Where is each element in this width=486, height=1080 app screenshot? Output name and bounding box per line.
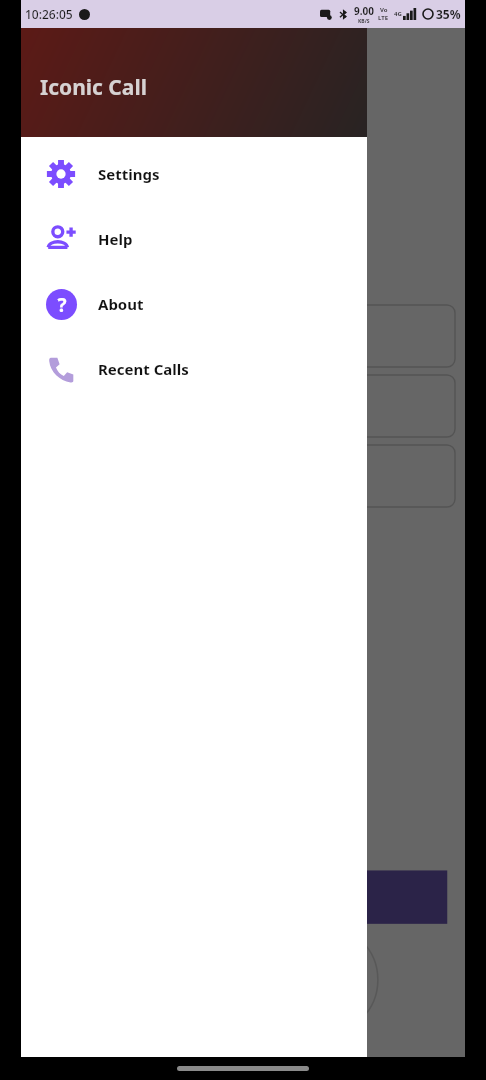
staticText: 10:26:05 (25, 6, 73, 22)
other: Recent Calls (47, 355, 75, 383)
button[interactable]: Help (30, 211, 358, 266)
other: Settings (46, 159, 76, 189)
button[interactable]: Recent Calls (30, 341, 358, 396)
staticText: Settings (98, 164, 160, 184)
staticText: Recent Calls (98, 359, 189, 379)
staticText: Iconic Call (40, 73, 147, 102)
other: Help (45, 223, 77, 255)
staticText: 9.00 (354, 4, 374, 18)
staticText: Help (98, 229, 133, 249)
other: About (46, 289, 77, 320)
staticText: 4G (394, 10, 402, 18)
button[interactable]: About (30, 276, 358, 331)
staticText: KB/S (358, 18, 370, 25)
staticText: Vo (380, 6, 388, 14)
staticText: ? (57, 292, 67, 318)
staticText: 35% (436, 6, 461, 22)
staticText: LTE (378, 14, 389, 22)
staticText: About (98, 294, 144, 314)
button[interactable]: Settings (30, 146, 358, 201)
